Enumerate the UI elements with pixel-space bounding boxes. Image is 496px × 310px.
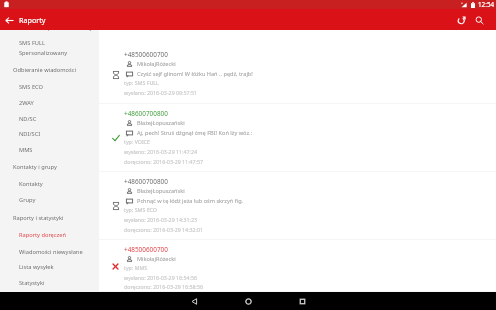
staticText: Odbieranie wiadomości xyxy=(13,66,76,74)
button[interactable]: Grupy xyxy=(0,193,99,207)
staticText: Spersonalizowany xyxy=(19,49,68,57)
staticText: +48600700800 xyxy=(124,177,168,186)
button[interactable]: Statystyki xyxy=(0,276,99,290)
staticText: doręczono: 2016-03-29 14:32:01 xyxy=(124,226,204,233)
staticText: Raporty i statystyki xyxy=(13,214,64,222)
staticText: 2WAY xyxy=(19,99,34,107)
staticText: Kontakty xyxy=(19,180,43,188)
button[interactable]: SMS PRO spersonalizowany xyxy=(0,30,99,35)
staticText: 12:54 xyxy=(478,0,495,9)
button[interactable]: Wiadomości niewysłane xyxy=(0,245,99,259)
staticText: +48600700800 xyxy=(124,109,168,118)
button[interactable]: +48600700800 xyxy=(99,104,496,172)
staticText: typ: MMS xyxy=(124,264,148,271)
staticText: Kontakty i grupy xyxy=(13,163,57,171)
button[interactable]: 2WAY xyxy=(0,96,99,110)
button[interactable]: Home xyxy=(239,292,257,310)
button[interactable]: +48500600700 xyxy=(99,240,496,292)
button[interactable]: Kontakty xyxy=(0,177,99,191)
button[interactable]: Search xyxy=(470,11,488,29)
staticText: Aj, pech! Struś dźgnął ćmę FBI! Koń lży … xyxy=(137,129,253,137)
button[interactable]: Recents xyxy=(293,292,311,310)
button[interactable]: MMS xyxy=(0,143,99,157)
button[interactable]: Kontakty i grupy xyxy=(0,160,99,174)
staticText: typ: SMS ECO xyxy=(124,206,157,213)
staticText: Raporty xyxy=(19,15,46,25)
button[interactable]: SMS FULL xyxy=(0,36,99,50)
button[interactable]: Raporty i statystyki xyxy=(0,211,99,225)
staticText: wysłano: 2016-03-29 11:47:24 xyxy=(124,148,198,155)
staticText: wysłano: 2016-03-29 16:54:56 xyxy=(124,274,198,281)
staticText: SMS PRO spersonalizowany xyxy=(19,30,93,32)
staticText: NDI/SCI xyxy=(19,130,41,138)
staticText: wysłano: 2016-03-29 14:31:23 xyxy=(124,216,198,223)
staticText: Wiadomości niewysłane xyxy=(19,248,83,256)
button[interactable]: Raporty doręczeń xyxy=(0,228,99,242)
staticText: Czyść sejf glinom! W łóżku Hań .. pędź, … xyxy=(137,70,253,78)
staticText: typ: SMS FULL xyxy=(124,79,159,86)
button[interactable]: Spersonalizowany xyxy=(0,46,99,60)
staticText: MikołajRóżecki xyxy=(137,60,176,68)
staticText: Grupy xyxy=(19,196,36,204)
staticText: Statystyki xyxy=(19,279,45,287)
button[interactable]: Back xyxy=(0,11,18,29)
staticText: ND/SC xyxy=(19,115,37,123)
staticText: typ: VOICE xyxy=(124,138,151,145)
staticText: SMS FULL xyxy=(19,39,45,47)
button[interactable]: Back xyxy=(185,292,203,310)
staticText: doręczono: 2016-03-29 11:47:57 xyxy=(124,158,204,165)
staticText: SMS ECO xyxy=(19,83,43,91)
button[interactable]: SMS ECO xyxy=(0,80,99,94)
button[interactable]: NDI/SCI xyxy=(0,127,99,141)
staticText: BłażejŁopuszański xyxy=(137,187,185,195)
button[interactable]: Lista wysyłek xyxy=(0,260,99,274)
staticText: +48500600700 xyxy=(124,245,168,254)
button[interactable]: +48600700800 xyxy=(99,172,496,240)
staticText: Raporty doręczeń xyxy=(19,231,66,239)
staticText: Pchnąć w tę łódź jeża lub ośm skrzyń fig… xyxy=(137,197,244,205)
staticText: Lista wysyłek xyxy=(19,263,54,271)
staticText: BłażejŁopuszański xyxy=(137,119,185,127)
button[interactable]: Odbieranie wiadomości xyxy=(0,63,99,77)
staticText: doręczono: 2016-03-29 16:58:56 xyxy=(124,283,204,290)
staticText: +48500600700 xyxy=(124,50,168,59)
staticText: MMS xyxy=(19,146,33,154)
button[interactable]: ND/SC xyxy=(0,112,99,126)
button[interactable]: Refresh xyxy=(452,11,470,29)
staticText: wysłano: 2016-03-29 09:57:51 xyxy=(124,89,198,96)
staticText: MikołajRóżecki xyxy=(137,255,176,263)
button[interactable]: +48500600700 xyxy=(99,45,496,104)
